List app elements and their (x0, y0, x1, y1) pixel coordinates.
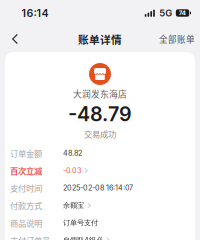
staticText: 2025-02-08 16:14:07 (63, 184, 133, 192)
staticText: 全部账单 (159, 33, 195, 45)
staticText: -48.79 (68, 102, 132, 126)
button[interactable]: 百次立减 (10, 162, 190, 179)
button[interactable]: 支付订单号 (10, 231, 190, 240)
button[interactable]: 全部账单 (159, 28, 195, 50)
staticText: 商品说明 (10, 217, 42, 229)
staticText: 余额宝 (63, 201, 84, 210)
staticText: 百次立减 (10, 165, 42, 177)
staticText: 大润发东海店 (73, 87, 127, 100)
button[interactable]: Back (5, 28, 25, 50)
staticText: 支付时间 (10, 182, 42, 194)
button[interactable]: 付款方式 (10, 197, 190, 214)
staticText: 交易成功 (84, 128, 116, 140)
staticText: 订单号支付 (63, 218, 98, 227)
staticText: 支付订单号 (10, 234, 50, 240)
staticText: 48.82 (63, 149, 82, 157)
staticText: 16:14 (21, 6, 48, 19)
staticText: 自领取4组必 (63, 236, 103, 240)
staticText: 账单详情 (78, 31, 122, 47)
staticText: 订单金额 (10, 147, 42, 159)
staticText: -0.03 (63, 166, 81, 175)
staticText: 付款方式 (10, 199, 42, 211)
staticText: 74 (179, 9, 187, 17)
staticText: 5G (159, 7, 172, 19)
